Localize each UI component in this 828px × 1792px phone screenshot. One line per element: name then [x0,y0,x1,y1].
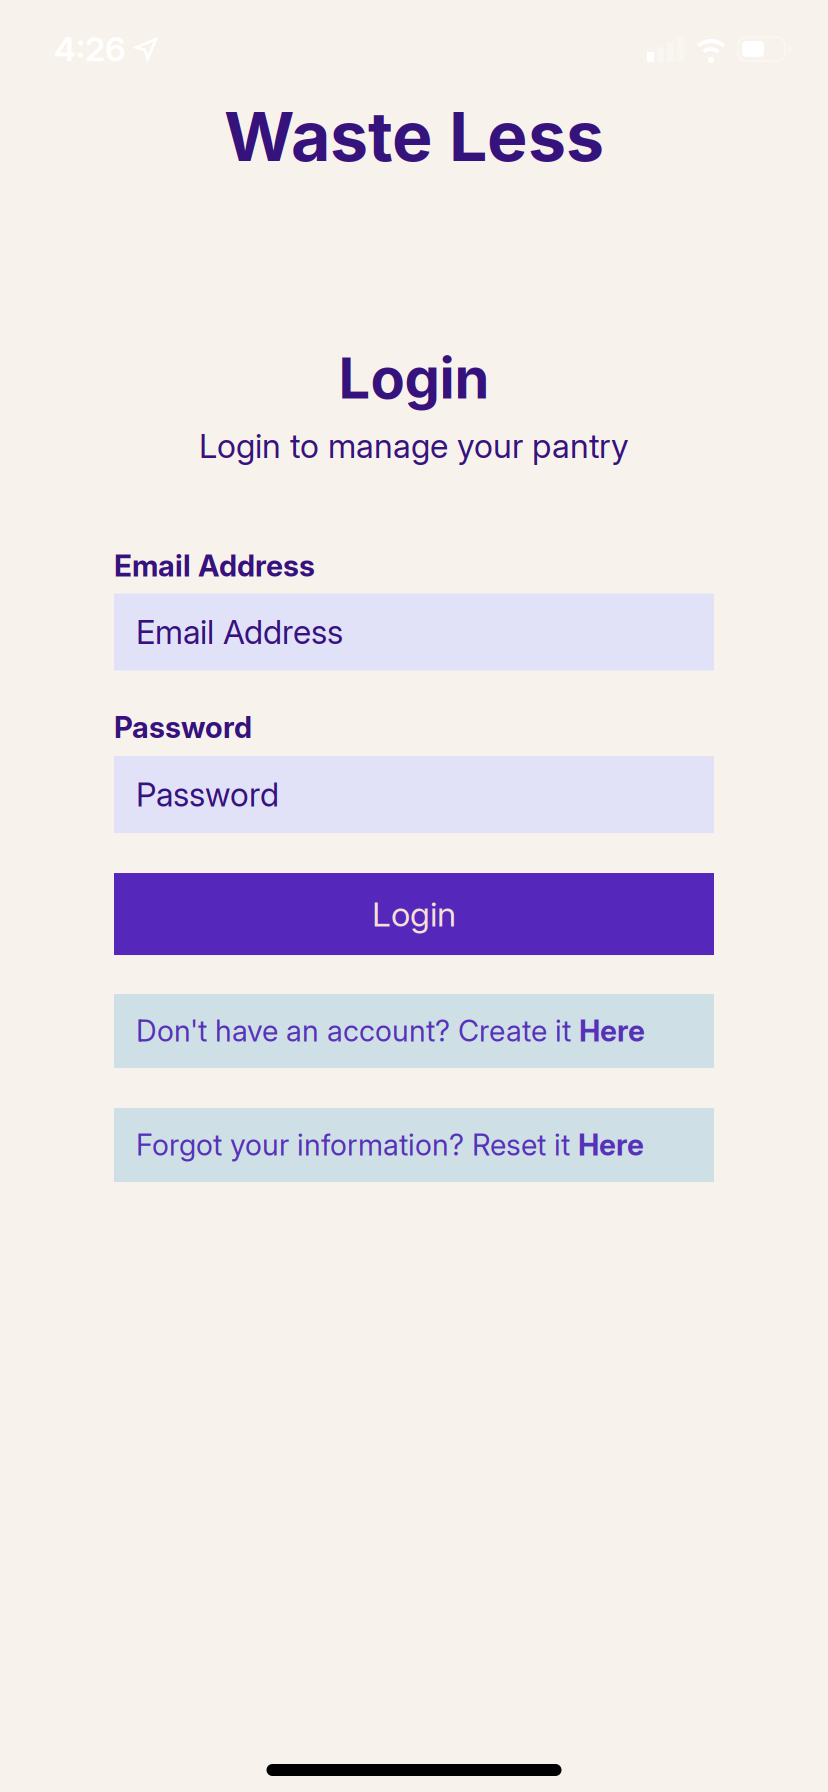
staticText: Email Address [114,548,315,583]
staticText: Login to manage your pantry [199,426,629,466]
staticText: Email Address [136,612,343,652]
staticText: Password [114,709,252,745]
button[interactable]: Login [114,873,714,955]
button[interactable]: Don't have an account? Create it Here [114,994,714,1068]
staticText: Password [136,775,279,814]
staticText: Login [372,893,456,935]
staticText: Login [338,344,489,412]
staticText: Forgot your information? Reset it Here [136,1128,644,1162]
staticText: Don't have an account? Create it Here [136,1014,645,1048]
staticText: Waste Less [224,95,604,177]
button[interactable]: Forgot your information? Reset it Here [114,1108,714,1182]
staticText: 4:26 [54,29,126,69]
